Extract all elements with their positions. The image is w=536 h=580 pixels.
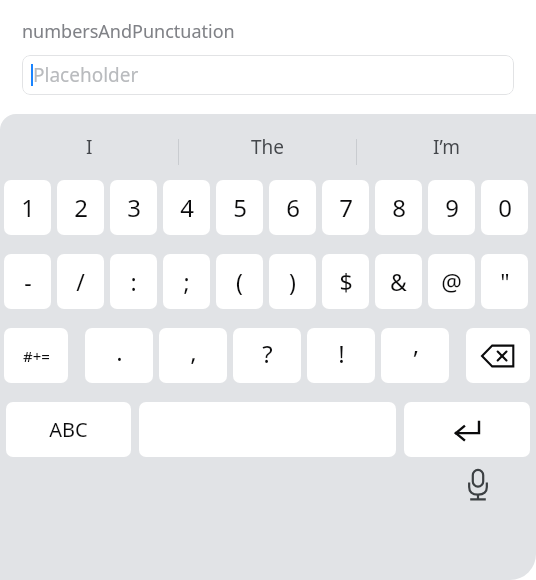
staticText: 4 xyxy=(180,191,194,224)
staticText: ! xyxy=(338,337,345,370)
button[interactable]: & xyxy=(375,254,422,309)
button[interactable]: I xyxy=(0,114,178,180)
staticText: . xyxy=(116,335,123,368)
staticText: 5 xyxy=(233,191,247,224)
button[interactable]: 8 xyxy=(375,180,422,235)
button[interactable]: . xyxy=(85,328,153,383)
button[interactable]: Return xyxy=(404,402,530,457)
staticText: ) xyxy=(289,266,296,297)
staticText: 1 xyxy=(21,191,35,224)
staticText: 9 xyxy=(445,191,459,224)
staticText: $ xyxy=(339,266,353,297)
button[interactable]: : xyxy=(110,254,157,309)
button[interactable]: 2 xyxy=(57,180,104,235)
button[interactable]: Voice input xyxy=(456,463,500,507)
staticText: 8 xyxy=(392,191,406,224)
staticText: 7 xyxy=(339,191,353,224)
button[interactable]: / xyxy=(57,254,104,309)
button[interactable]: 9 xyxy=(428,180,475,235)
button[interactable]: - xyxy=(4,254,51,309)
staticText: Placeholder xyxy=(33,62,139,88)
staticText: 0 xyxy=(498,191,512,224)
button[interactable]: ; xyxy=(163,254,210,309)
staticText: - xyxy=(24,266,32,297)
button[interactable]: ABC xyxy=(6,402,131,457)
button[interactable]: Backspace xyxy=(466,328,530,383)
staticText: / xyxy=(76,266,85,297)
staticText: ABC xyxy=(49,416,88,443)
button[interactable]: ’ xyxy=(381,328,449,383)
button[interactable]: 7 xyxy=(322,180,369,235)
staticText: & xyxy=(390,266,407,297)
button[interactable]: 4 xyxy=(163,180,210,235)
staticText: ? xyxy=(262,337,273,370)
staticText: I’m xyxy=(433,134,460,160)
button[interactable]: 0 xyxy=(481,180,528,235)
button[interactable]: 3 xyxy=(110,180,157,235)
button[interactable]: $ xyxy=(322,254,369,309)
staticText: 2 xyxy=(74,191,88,224)
staticText: : xyxy=(130,266,137,297)
staticText: ( xyxy=(236,266,243,297)
button[interactable]: 6 xyxy=(269,180,316,235)
button[interactable]: The xyxy=(178,114,357,180)
staticText: " xyxy=(500,266,510,297)
staticText: @ xyxy=(441,266,462,297)
staticText: numbersAndPunctuation xyxy=(22,19,235,44)
button[interactable]: ( xyxy=(216,254,263,309)
staticText: The xyxy=(251,134,285,160)
button[interactable]: 1 xyxy=(4,180,51,235)
button[interactable]: ) xyxy=(269,254,316,309)
staticText: , xyxy=(190,335,197,368)
button[interactable]: 5 xyxy=(216,180,263,235)
button[interactable]: ! xyxy=(307,328,375,383)
button[interactable]: ? xyxy=(233,328,301,383)
button[interactable]: Placeholder xyxy=(22,55,514,95)
button[interactable]: #+= xyxy=(4,328,68,383)
button[interactable]: " xyxy=(481,254,528,309)
button[interactable]: @ xyxy=(428,254,475,309)
staticText: ’ xyxy=(413,342,418,375)
button[interactable]: I’m xyxy=(357,114,536,180)
staticText: 3 xyxy=(127,191,141,224)
staticText: #+= xyxy=(23,346,50,366)
button[interactable]: , xyxy=(159,328,227,383)
staticText: I xyxy=(86,134,93,160)
staticText: ; xyxy=(183,266,190,297)
staticText: 6 xyxy=(286,191,300,224)
